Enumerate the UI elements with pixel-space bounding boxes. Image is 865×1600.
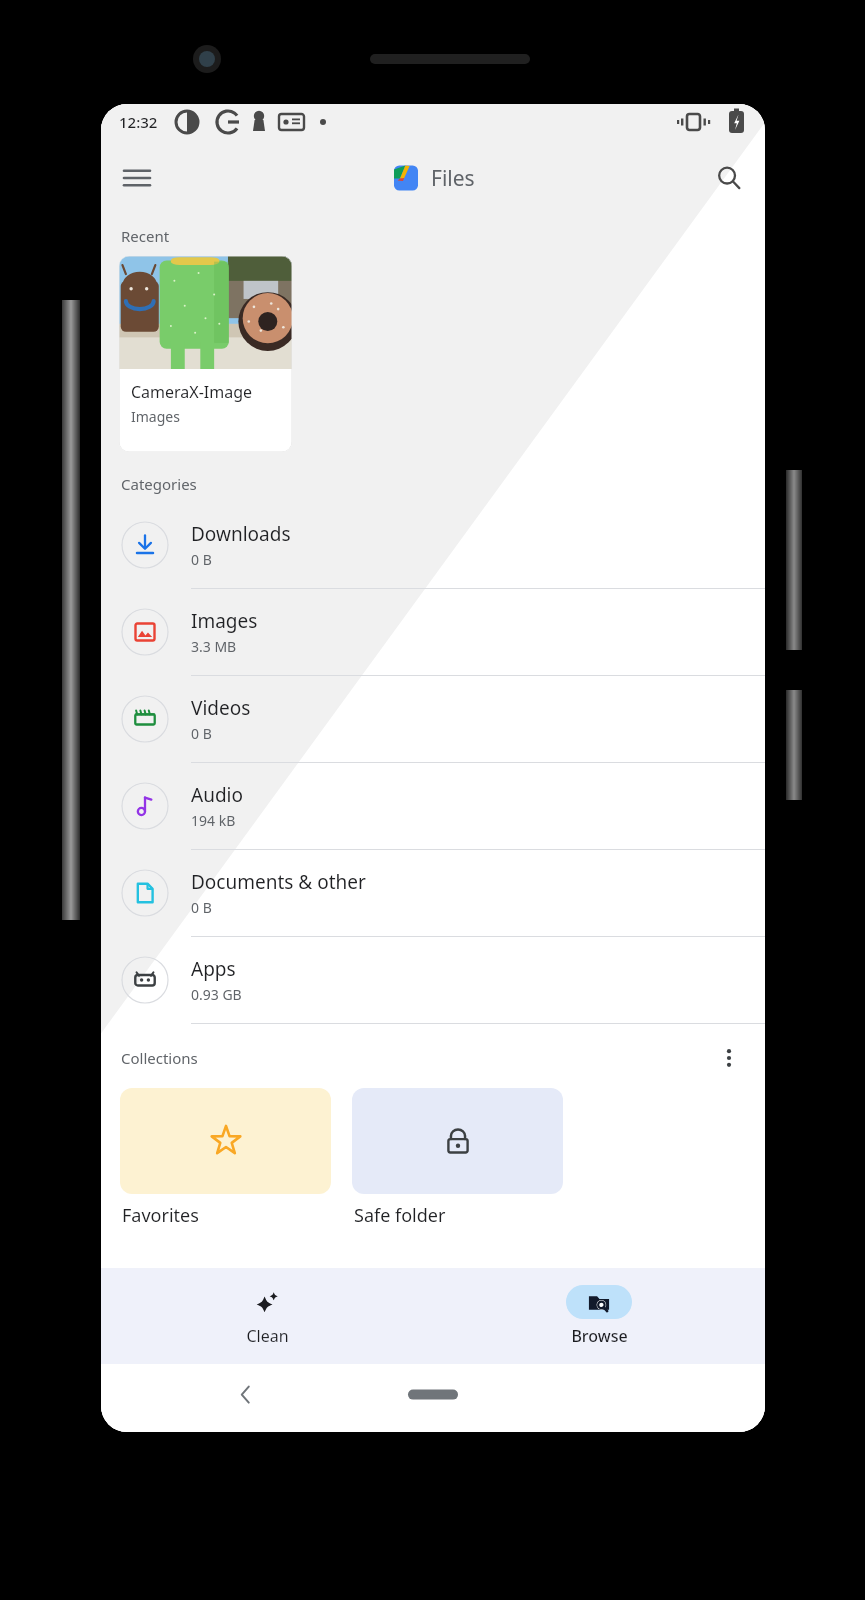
staticText: CameraX-Image — [131, 381, 253, 403]
staticText: 0.93 GB — [191, 985, 242, 1004]
button[interactable]: More options — [707, 1038, 751, 1078]
button[interactable]: Videos — [101, 676, 765, 762]
staticText: 194 kB — [191, 811, 236, 830]
staticText: Apps — [191, 956, 236, 982]
staticText: Clean — [246, 1325, 289, 1347]
staticText: Collections — [121, 1048, 198, 1068]
button[interactable]: Clean — [101, 1268, 433, 1364]
button[interactable]: Audio — [101, 763, 765, 849]
staticText: Images — [191, 608, 258, 634]
staticText: 0 B — [191, 724, 212, 743]
staticText: Audio — [191, 782, 243, 808]
staticText: 3.3 MB — [191, 637, 237, 656]
staticText: 0 B — [191, 550, 212, 569]
staticText: 0 B — [191, 898, 212, 917]
staticText: Videos — [191, 695, 251, 721]
button[interactable]: Images — [101, 589, 765, 675]
staticText: Documents & other — [191, 869, 366, 895]
staticText: Categories — [121, 474, 197, 494]
staticText: Images — [131, 407, 180, 426]
staticText: 12:32 — [119, 112, 158, 132]
button[interactable]: Favorites — [120, 1088, 331, 1194]
button[interactable]: Safe folder — [352, 1088, 563, 1194]
button[interactable]: Documents & other — [101, 850, 765, 936]
button[interactable]: CameraX-Image — [119, 256, 292, 452]
button[interactable]: Search — [701, 150, 757, 206]
staticText: Downloads — [191, 521, 291, 547]
staticText: Browse — [571, 1325, 628, 1347]
staticText: Recent — [121, 226, 170, 246]
button[interactable]: Apps — [101, 937, 765, 1023]
button[interactable]: Open navigation menu — [109, 150, 165, 206]
button[interactable]: Downloads — [101, 502, 765, 588]
button[interactable]: Browse — [433, 1268, 765, 1364]
staticText: Favorites — [122, 1203, 199, 1228]
staticText: Files — [431, 164, 475, 193]
staticText: Safe folder — [354, 1203, 446, 1228]
